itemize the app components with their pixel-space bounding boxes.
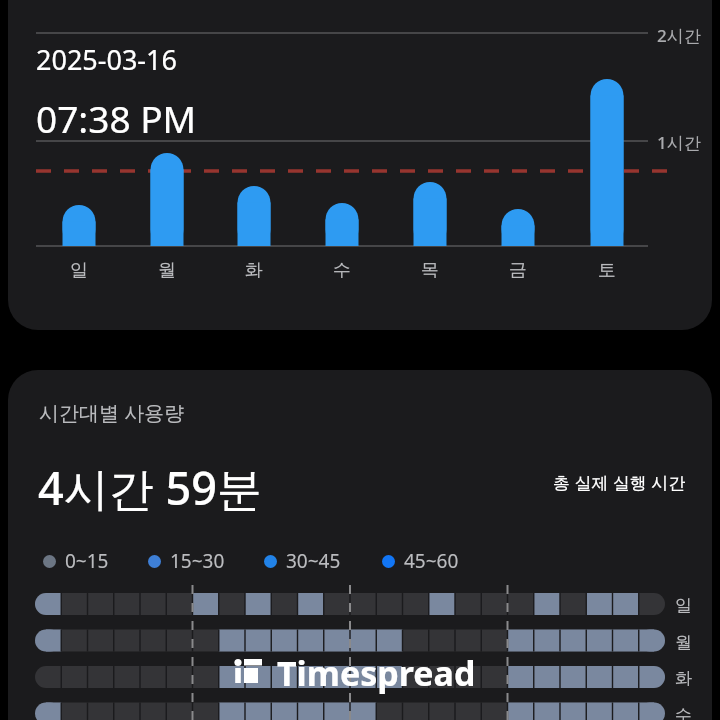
- staticText: 금: [496, 259, 540, 282]
- staticText: 45~60: [404, 548, 459, 574]
- button[interactable]: 45~60: [382, 548, 459, 574]
- staticText: 월: [675, 632, 692, 653]
- staticText: 일: [57, 259, 101, 282]
- staticText: 화: [232, 259, 276, 282]
- button[interactable]: [8, 0, 712, 330]
- staticText: 1시간: [657, 131, 701, 154]
- other: Timespread: [234, 650, 476, 696]
- staticText: 수: [675, 705, 692, 720]
- staticText: 0~15: [65, 548, 109, 574]
- staticText: 4시간 59분: [38, 457, 262, 518]
- staticText: 2025-03-16: [36, 41, 177, 78]
- button[interactable]: 15~30: [148, 548, 225, 574]
- button[interactable]: 0~15: [43, 548, 109, 574]
- staticText: 07:38 PM: [36, 93, 197, 143]
- staticText: 수: [320, 259, 364, 282]
- staticText: 총 실제 실행 시간: [553, 471, 686, 494]
- staticText: 화: [675, 668, 692, 689]
- button[interactable]: [8, 370, 712, 720]
- staticText: Timespread: [277, 650, 476, 696]
- staticText: 목: [408, 259, 452, 282]
- staticText: 시간대별 사용량: [39, 399, 185, 426]
- staticText: 월: [145, 259, 189, 282]
- staticText: 30~45: [286, 548, 341, 574]
- button[interactable]: 30~45: [264, 548, 341, 574]
- staticText: 2시간: [657, 24, 701, 47]
- staticText: 15~30: [170, 548, 225, 574]
- staticText: 토: [585, 259, 629, 282]
- staticText: 일: [675, 595, 692, 616]
